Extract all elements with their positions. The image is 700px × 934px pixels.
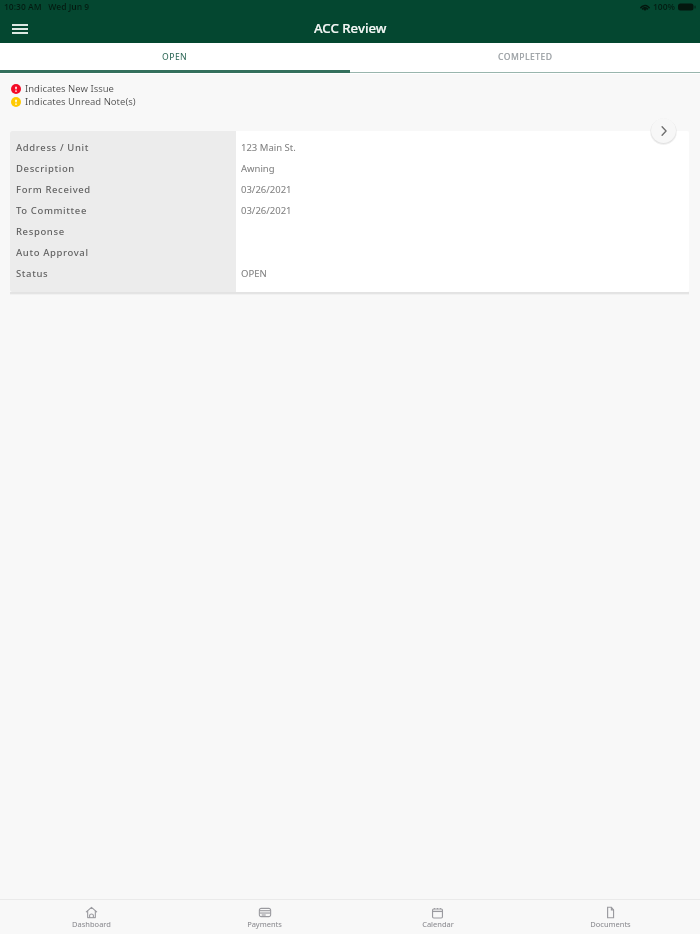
staticText: Address / Unit — [16, 141, 89, 154]
staticText: Auto Approval — [16, 246, 89, 259]
staticText: Documents — [590, 919, 631, 929]
button[interactable]: OPEN — [0, 43, 350, 74]
button[interactable]: View details — [649, 116, 678, 145]
staticText: COMPLETED — [498, 51, 553, 63]
staticText: ACC Review — [314, 19, 387, 37]
button[interactable]: Calendar — [351, 900, 524, 934]
staticText: OPEN — [162, 51, 188, 63]
button[interactable]: Dashboard — [4, 900, 178, 934]
staticText: 03/26/2021 — [241, 204, 292, 217]
staticText: Payments — [247, 919, 282, 929]
staticText: Calendar — [422, 919, 454, 929]
button[interactable]: Payments — [178, 900, 351, 934]
staticText: Response — [16, 225, 65, 238]
staticText: To Committee — [16, 204, 87, 217]
button[interactable]: Open navigation menu — [4, 14, 35, 43]
staticText: OPEN — [241, 267, 267, 280]
staticText: Indicates New Issue — [25, 82, 114, 95]
staticText: Awning — [241, 162, 275, 175]
staticText: Description — [16, 162, 75, 175]
staticText: Status — [16, 267, 49, 280]
staticText: 10:30 AM Wed Jun 9 — [4, 1, 90, 13]
button[interactable]: COMPLETED — [350, 43, 700, 74]
button[interactable]: Documents — [524, 900, 697, 934]
staticText: 123 Main St. — [241, 141, 296, 154]
button[interactable]: Address / Unit — [10, 131, 689, 292]
staticText: Dashboard — [72, 919, 111, 929]
staticText: Indicates Unread Note(s) — [25, 95, 136, 108]
staticText: Form Received — [16, 183, 91, 196]
staticText: 03/26/2021 — [241, 183, 292, 196]
staticText: 100% — [653, 1, 676, 13]
